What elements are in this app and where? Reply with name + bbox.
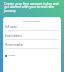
button[interactable]: Full name <box>5 25 59 31</box>
staticText: Personal details <box>23 20 41 23</box>
staticText: Phone number <box>5 43 24 47</box>
staticText: Full name <box>5 25 17 29</box>
staticText: Email address <box>5 34 22 38</box>
button[interactable]: Email address <box>5 34 59 40</box>
button[interactable]: I agree <box>5 54 16 57</box>
staticText: I agree <box>8 54 16 57</box>
button[interactable]: Phone number <box>5 43 59 49</box>
staticText: Create your free account today and get s… <box>4 1 59 13</box>
